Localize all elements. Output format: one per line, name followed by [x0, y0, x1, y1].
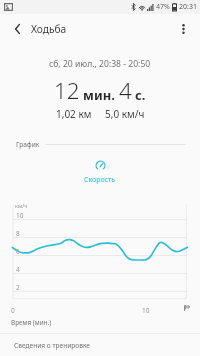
staticText: 10: [142, 306, 150, 315]
staticText: 6: [16, 247, 20, 256]
staticText: с.: [135, 86, 146, 104]
staticText: 47%: [156, 2, 170, 12]
button[interactable]: Back: [5, 17, 29, 41]
other: Finish: [184, 305, 190, 311]
staticText: 4: [16, 265, 20, 274]
button[interactable]: More options: [170, 16, 196, 42]
button[interactable]: Сведения о тренировке: [0, 334, 200, 356]
staticText: сб, 20 июл., 20:38 - 20:50: [49, 58, 151, 70]
staticText: Скорость: [84, 175, 116, 185]
staticText: Время (мин.): [11, 318, 52, 327]
staticText: 5,0 км/ч: [105, 107, 145, 121]
staticText: 4: [119, 75, 132, 106]
staticText: км/ч: [15, 202, 28, 209]
staticText: Ходьба: [31, 22, 67, 36]
staticText: 0: [11, 306, 15, 315]
staticText: мин.: [83, 86, 115, 104]
button[interactable]: Скорость: [74, 158, 126, 187]
staticText: 8: [16, 229, 20, 238]
staticText: 10: [16, 211, 24, 220]
staticText: 1,02 км: [56, 107, 92, 121]
staticText: Сведения о тренировке: [14, 341, 90, 350]
staticText: 2: [16, 283, 20, 292]
staticText: 12: [54, 75, 80, 106]
staticText: 20:31: [179, 2, 197, 12]
staticText: График: [16, 140, 40, 149]
